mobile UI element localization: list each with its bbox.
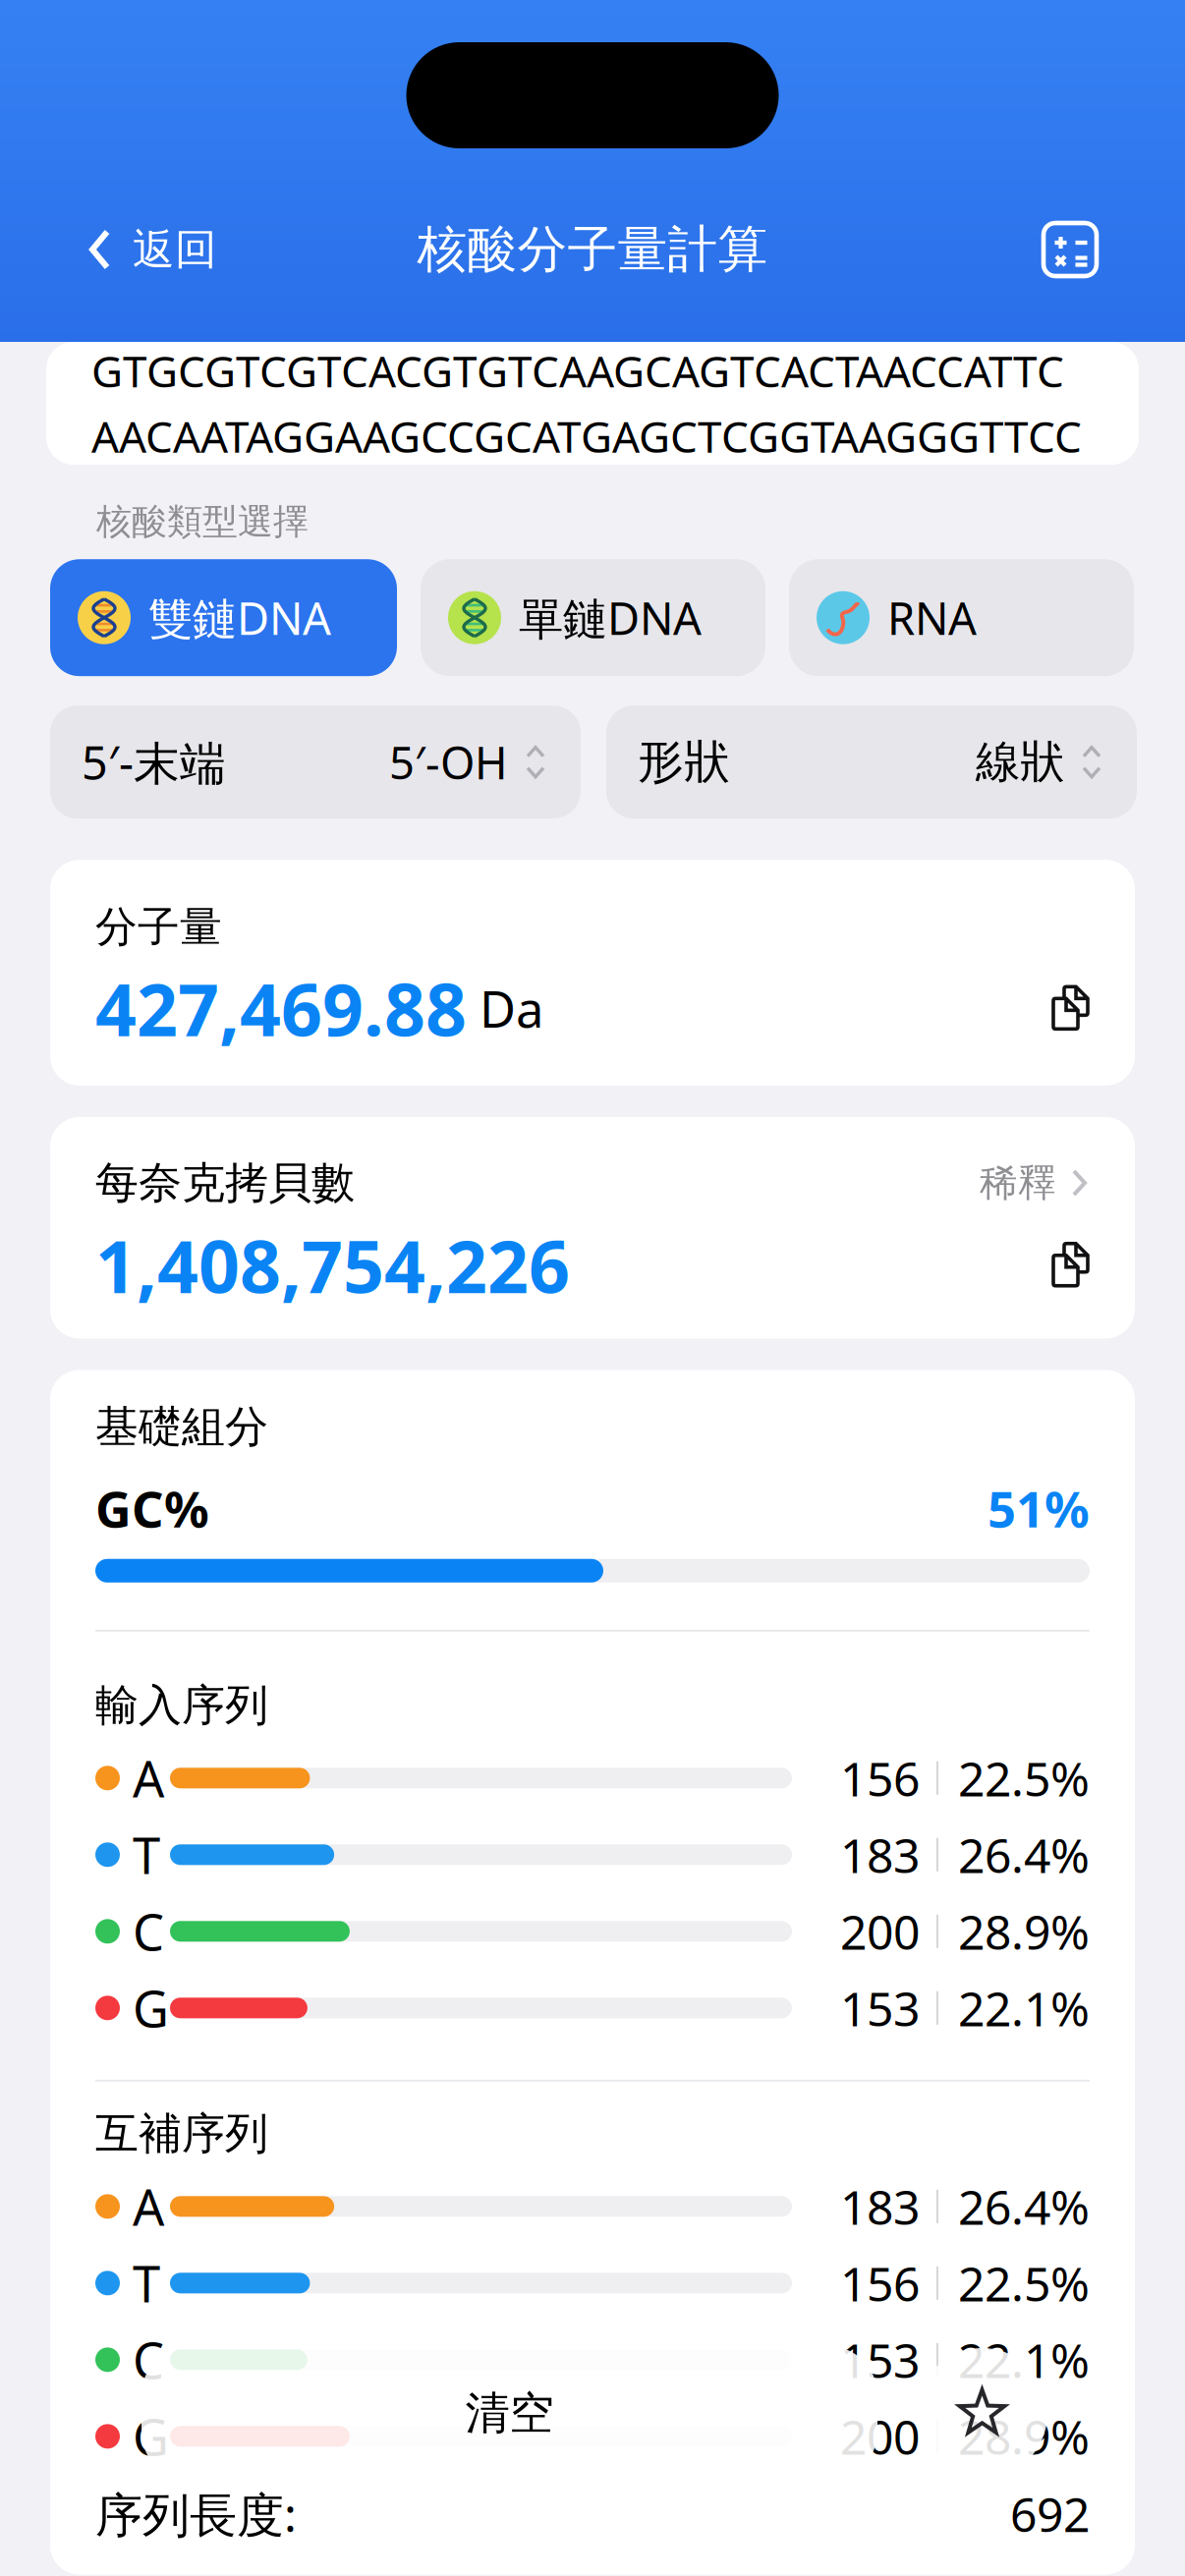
button[interactable]: Copy copies per nanogram [1050, 1242, 1090, 1289]
staticText: 核酸分子量計算 [417, 219, 768, 280]
staticText: AACAATAGGAAGCCGCATGAGCTCGGTAAGGGTTCC [91, 407, 1082, 465]
staticText: 156 [840, 2252, 920, 2314]
button[interactable]: Calculator [1010, 205, 1185, 294]
staticText: C [133, 2327, 164, 2393]
button[interactable]: 形狀 [606, 706, 1137, 819]
staticText: 22.5% [958, 2252, 1090, 2314]
staticText: 692 [1010, 2483, 1090, 2545]
button[interactable]: 雙鏈DNA [50, 559, 397, 676]
button[interactable]: 清空 [141, 2346, 877, 2481]
staticText: 線狀 [976, 735, 1064, 790]
staticText: 51% [987, 1475, 1090, 1541]
staticText: 清空 [465, 2386, 554, 2441]
button[interactable]: 5′-末端 [50, 706, 581, 819]
staticText: 互補序列 [95, 2107, 268, 2160]
staticText: 427,469.88 [95, 960, 467, 1056]
staticText: 基礎組分 [95, 1400, 268, 1453]
staticText: RNA [887, 588, 977, 647]
staticText: 輸入序列 [95, 1679, 268, 1732]
staticText: Da [467, 975, 543, 1041]
staticText: GTGCGTCGTCACGTGTCAAGCAGTCACTAACCATTC [91, 342, 1064, 399]
button[interactable]: 稀釋 [980, 1160, 1090, 1206]
staticText: 28.9% [958, 1900, 1090, 1963]
staticText: 形狀 [638, 734, 730, 790]
staticText: 28.9% [958, 2405, 1090, 2468]
staticText: 153 [840, 1977, 920, 2039]
staticText: GC% [95, 1475, 209, 1541]
staticText: T [133, 2250, 160, 2316]
button[interactable]: Copy molecular weight [1050, 985, 1090, 1032]
staticText: 1,408,754,226 [95, 1217, 570, 1313]
button[interactable]: Favorite [917, 2348, 1047, 2479]
staticText: 雙鏈DNA [148, 588, 331, 647]
staticText: 156 [840, 1747, 920, 1809]
staticText: 返回 [133, 224, 217, 275]
staticText: 單鏈DNA [519, 588, 702, 647]
staticText: 核酸類型選擇 [96, 500, 309, 543]
button[interactable]: 單鏈DNA [421, 559, 765, 676]
staticText: 5′-OH [389, 733, 508, 792]
staticText: 22.5% [958, 1747, 1090, 1809]
staticText: 每奈克拷貝數 [95, 1156, 355, 1209]
staticText: 26.4% [958, 2175, 1090, 2238]
staticText: A [133, 1745, 164, 1811]
staticText: 183 [840, 2175, 920, 2238]
staticText: G [133, 1975, 169, 2041]
staticText: 22.1% [958, 1977, 1090, 2039]
staticText: 分子量 [95, 901, 222, 953]
staticText: 5′-末端 [82, 732, 226, 793]
staticText: 26.4% [958, 1823, 1090, 1886]
button[interactable]: 返回 [0, 204, 256, 295]
staticText: 22.1% [958, 2328, 1090, 2391]
staticText: A [133, 2173, 164, 2240]
staticText: 200 [840, 1900, 920, 1963]
staticText: 200 [840, 2405, 920, 2468]
staticText: 183 [840, 1823, 920, 1886]
staticText: C [133, 1898, 164, 1964]
button[interactable]: RNA [789, 559, 1134, 676]
staticText: 稀釋 [980, 1160, 1056, 1206]
staticText: 序列長度: [95, 2483, 297, 2545]
staticText: 153 [840, 2328, 920, 2391]
staticText: G [133, 2403, 169, 2469]
staticText: T [133, 1822, 160, 1888]
